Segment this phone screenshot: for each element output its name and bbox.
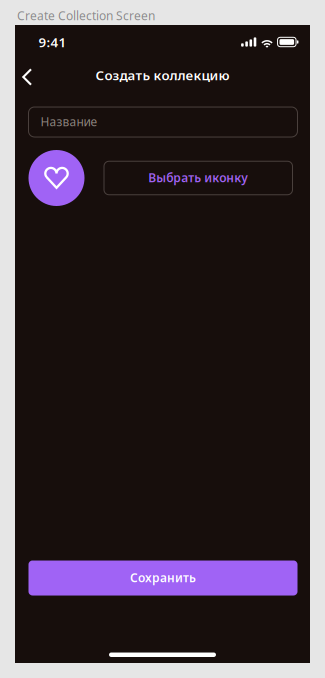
staticText: 9:41 — [38, 33, 66, 51]
staticText: Выбрать иконку — [148, 169, 248, 185]
button[interactable]: Выбрать иконку — [104, 161, 292, 195]
button[interactable]: Сохранить — [28, 560, 297, 595]
staticText: Create Collection Screen — [17, 7, 155, 23]
button[interactable]: Back — [15, 59, 43, 95]
staticText: Сохранить — [130, 569, 196, 585]
staticText: Создать коллекцию — [95, 66, 229, 84]
button[interactable]: Collection icon — [28, 150, 84, 206]
button[interactable]: Название — [28, 107, 297, 137]
staticText: Название — [40, 113, 97, 129]
